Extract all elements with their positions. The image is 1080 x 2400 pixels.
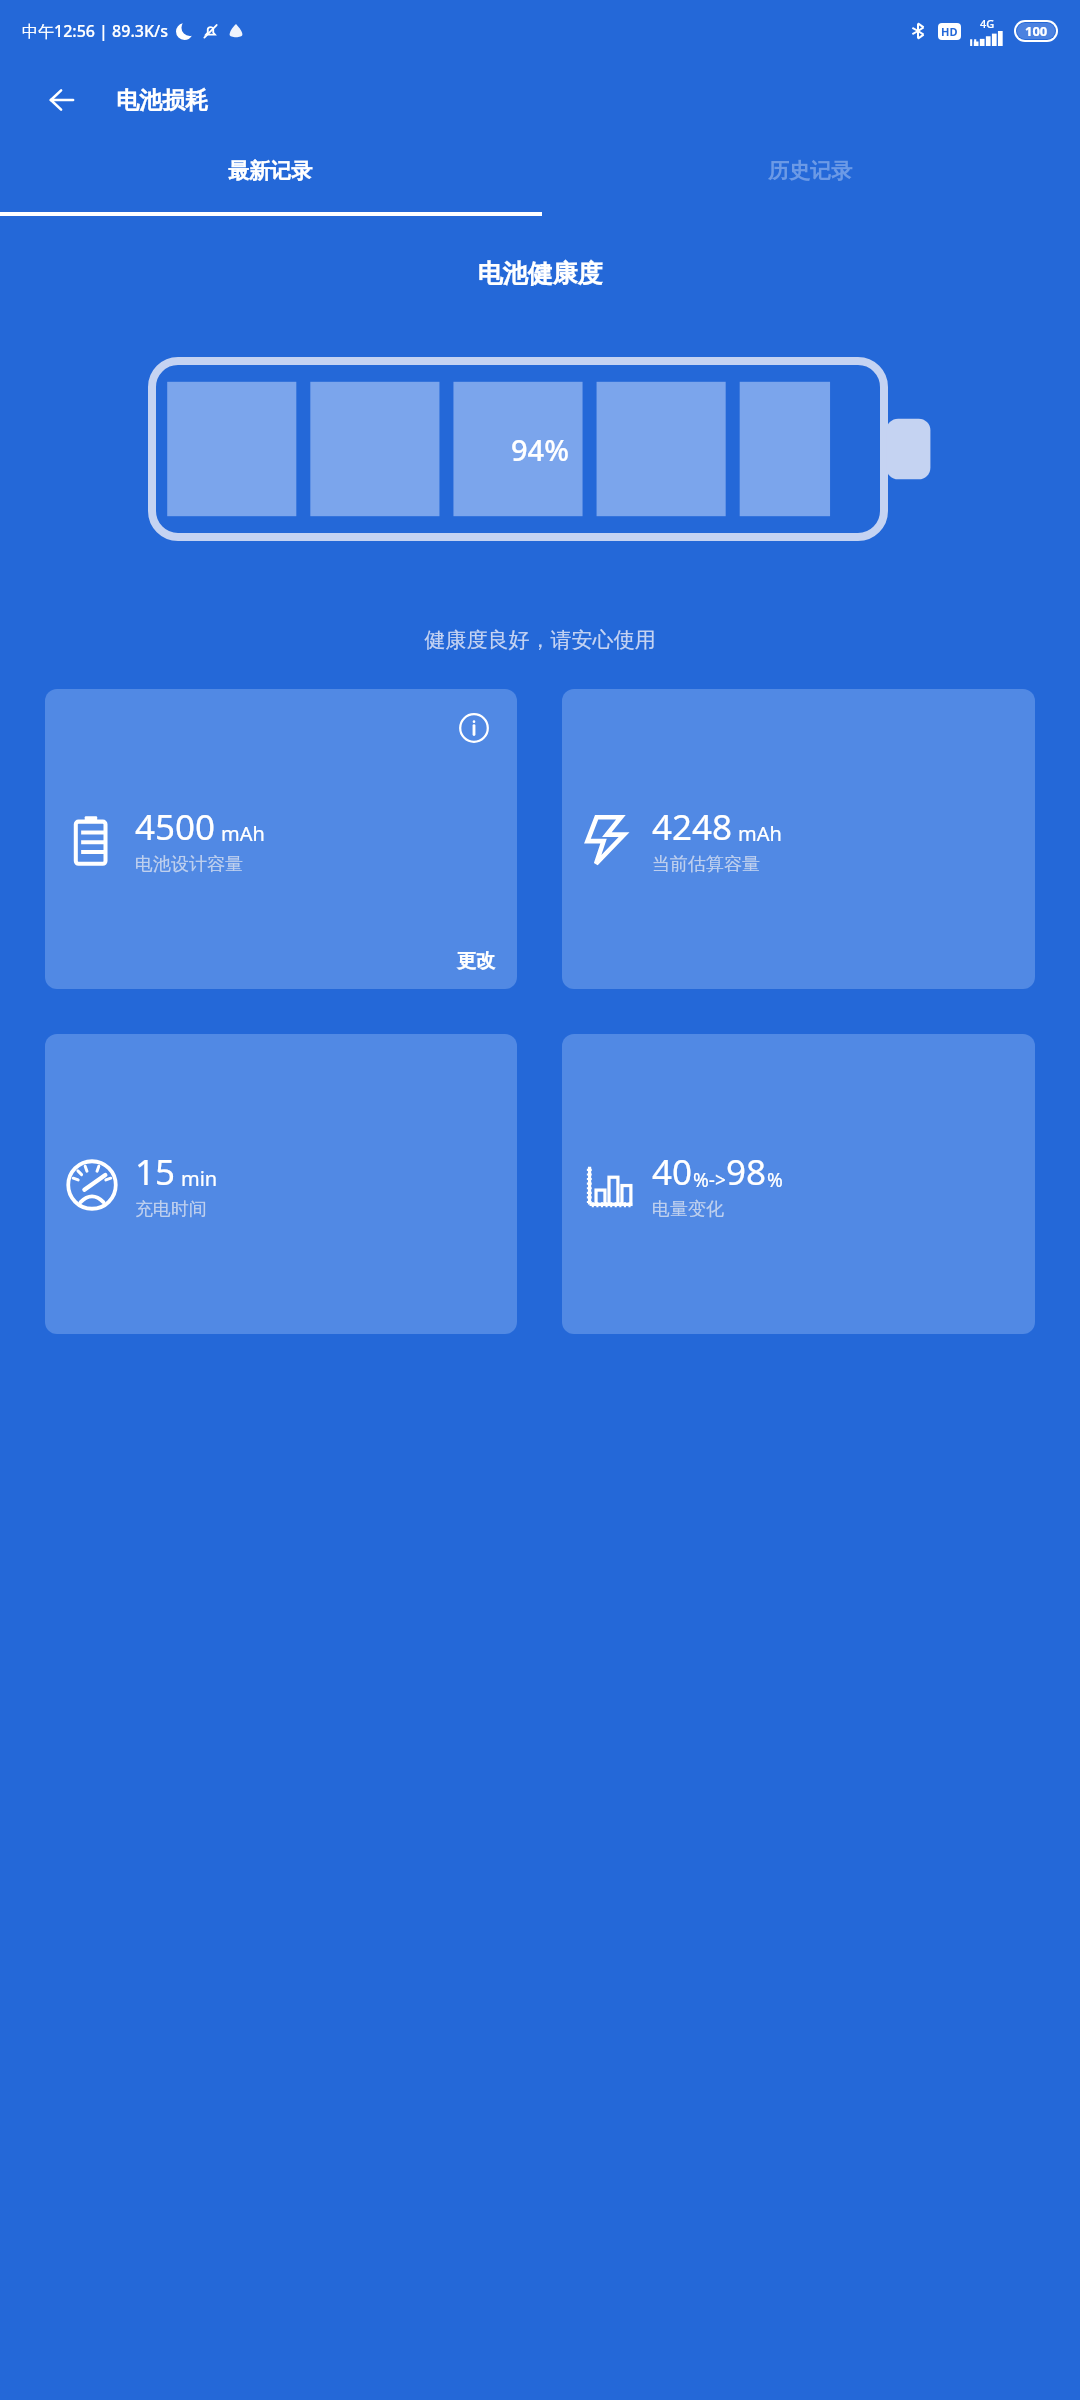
staticText: 最新记录 bbox=[228, 158, 312, 184]
staticText: 电量变化 bbox=[652, 1198, 724, 1221]
staticText: 电池设计容量 bbox=[135, 853, 243, 876]
staticText: 电池健康度 bbox=[0, 258, 1080, 289]
staticText: 中午12:56 | 89.3K/s bbox=[22, 20, 168, 42]
button[interactable]: 15 bbox=[45, 1034, 517, 1334]
button[interactable]: 最新记录 bbox=[0, 138, 540, 204]
button[interactable]: 40 bbox=[562, 1034, 1035, 1334]
staticText: %-> bbox=[693, 1167, 726, 1193]
button[interactable]: Info bbox=[45, 689, 517, 989]
staticText: 当前估算容量 bbox=[652, 853, 760, 876]
staticText: 电池损耗 bbox=[116, 86, 208, 115]
staticText: min bbox=[181, 1165, 218, 1192]
button[interactable]: Back bbox=[36, 74, 88, 126]
staticText: HD bbox=[941, 24, 958, 39]
staticText: 94% bbox=[511, 430, 569, 469]
button[interactable]: 4248 bbox=[562, 689, 1035, 989]
staticText: 100 bbox=[1025, 22, 1048, 40]
staticText: 15 bbox=[135, 1148, 176, 1196]
staticText: mAh bbox=[738, 820, 782, 847]
button[interactable]: 历史记录 bbox=[540, 138, 1080, 204]
staticText: 历史记录 bbox=[768, 158, 852, 184]
staticText: 健康度良好，请安心使用 bbox=[0, 627, 1080, 653]
staticText: % bbox=[767, 1167, 783, 1193]
button[interactable]: Info bbox=[457, 711, 491, 745]
staticText: 4500 bbox=[135, 803, 216, 851]
staticText: 4G bbox=[980, 16, 995, 31]
staticText: 4248 bbox=[652, 803, 733, 851]
staticText: mAh bbox=[221, 820, 265, 847]
button[interactable]: 更改 bbox=[457, 949, 495, 973]
staticText: 充电时间 bbox=[135, 1198, 207, 1221]
staticText: 98 bbox=[726, 1148, 767, 1196]
staticText: 更改 bbox=[457, 949, 495, 973]
staticText: 40 bbox=[652, 1148, 693, 1196]
